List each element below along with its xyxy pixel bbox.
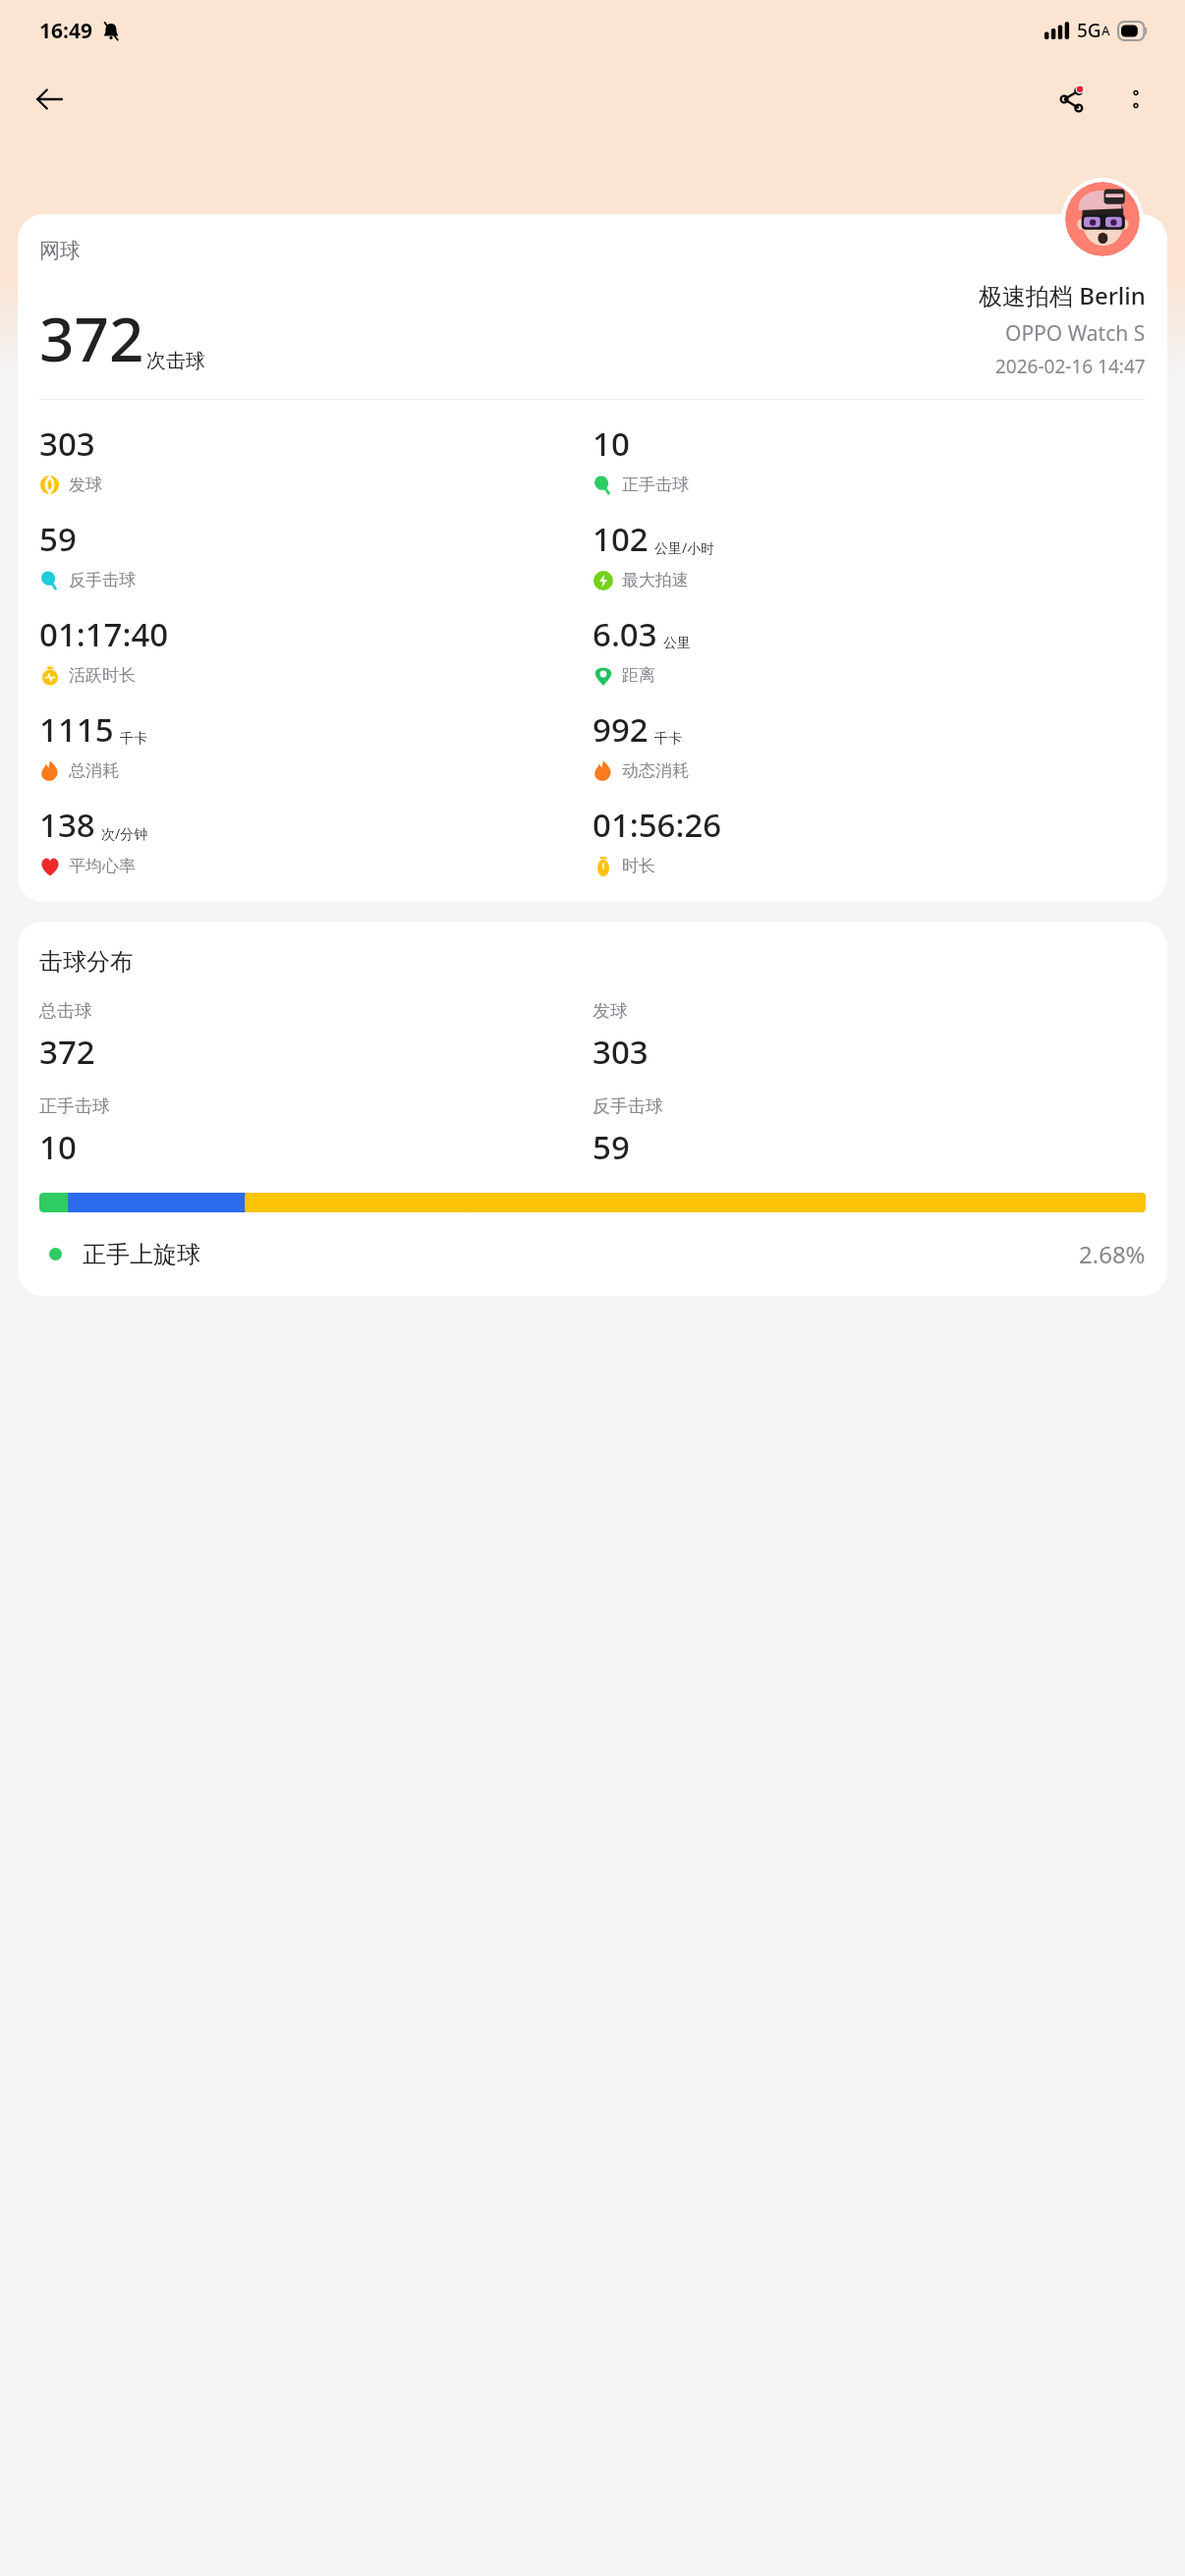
staticText: 公里: [663, 635, 691, 652]
staticText: 372: [39, 297, 144, 379]
staticText: 2026-02-16 14:47: [995, 354, 1146, 379]
staticText: 2.68%: [1079, 1238, 1146, 1270]
staticText: 6.03: [592, 612, 657, 656]
button[interactable]: 正手上旋球: [39, 1238, 1146, 1270]
staticText: 总击球: [39, 1000, 92, 1023]
staticText: 303: [39, 421, 95, 466]
staticText: 公里/小时: [654, 538, 715, 557]
staticText: 正手击球: [622, 475, 689, 495]
staticText: 102: [592, 517, 649, 561]
staticText: 极速拍档 Berlin: [979, 279, 1146, 311]
button[interactable]: More options: [1108, 72, 1163, 127]
staticText: 发球: [592, 1000, 628, 1023]
staticText: A: [1101, 22, 1110, 39]
staticText: 10: [39, 1125, 77, 1169]
staticText: 平均心率: [69, 856, 136, 876]
staticText: 千卡: [120, 730, 147, 748]
staticText: 反手击球: [592, 1095, 663, 1118]
staticText: 千卡: [654, 730, 682, 748]
staticText: 距离: [622, 665, 655, 686]
staticText: 总消耗: [69, 760, 119, 781]
button[interactable]: 击球分布: [18, 922, 1167, 1296]
staticText: 59: [592, 1125, 630, 1169]
staticText: 59: [39, 517, 77, 561]
staticText: 138: [39, 803, 95, 847]
button[interactable]: Profile avatar: [1065, 182, 1140, 256]
button[interactable]: Share: [1044, 72, 1099, 127]
staticText: 01:17:40: [39, 612, 169, 656]
staticText: 372: [39, 1030, 95, 1074]
staticText: 1115: [39, 707, 114, 752]
button[interactable]: 网球: [18, 214, 1167, 902]
staticText: OPPO Watch S: [1005, 319, 1146, 348]
staticText: 网球: [39, 238, 81, 263]
staticText: 发球: [69, 475, 102, 495]
staticText: 正手上旋球: [83, 1240, 200, 1269]
staticText: 303: [592, 1030, 649, 1074]
staticText: 次击球: [146, 349, 205, 373]
staticText: 01:56:26: [592, 803, 722, 847]
staticText: 击球分布: [39, 947, 134, 977]
staticText: 次/分钟: [101, 824, 148, 843]
staticText: 活跃时长: [69, 665, 136, 686]
staticText: 动态消耗: [622, 760, 689, 781]
staticText: 最大拍速: [622, 570, 689, 590]
staticText: 16:49: [39, 17, 92, 45]
staticText: 5G: [1077, 18, 1101, 43]
staticText: 992: [592, 707, 649, 752]
staticText: 10: [592, 421, 630, 466]
staticText: 反手击球: [69, 570, 136, 590]
staticText: 正手击球: [39, 1095, 110, 1118]
button[interactable]: Back: [22, 72, 77, 127]
staticText: 时长: [622, 856, 655, 876]
